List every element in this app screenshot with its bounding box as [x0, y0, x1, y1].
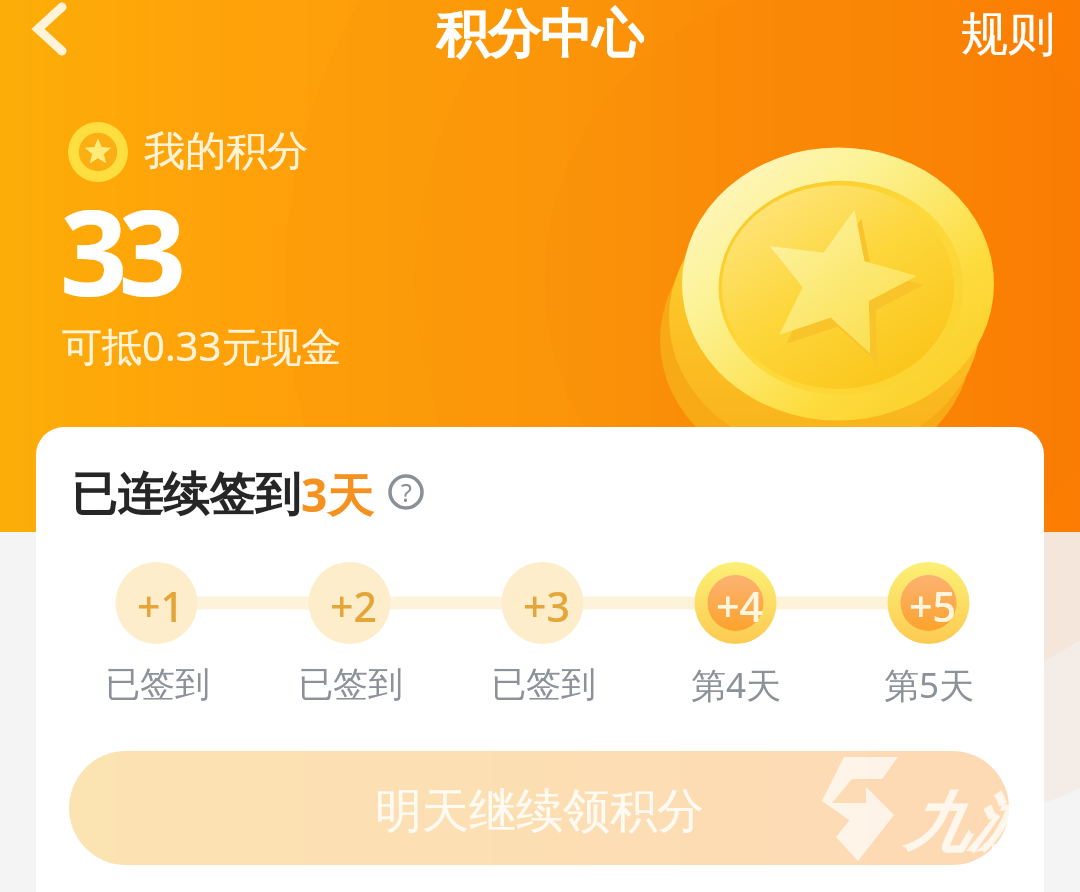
- staticText: 3天: [301, 463, 374, 526]
- staticText: 积分中心: [436, 2, 644, 60]
- button[interactable]: +5: [886, 560, 978, 652]
- button[interactable]: 规则: [936, 0, 1080, 58]
- staticText: 九游: [904, 783, 1032, 864]
- staticText: 第5天: [884, 661, 975, 707]
- staticText: 规则: [961, 5, 1055, 63]
- staticText: 我的积分: [144, 126, 308, 178]
- button[interactable]: Back: [0, 0, 100, 58]
- staticText: 第4天: [691, 661, 782, 707]
- button[interactable]: +1: [114, 560, 206, 652]
- staticText: ?: [401, 475, 412, 509]
- button[interactable]: Help: [388, 474, 424, 510]
- staticText: +3: [523, 578, 570, 634]
- staticText: +2: [330, 578, 377, 634]
- staticText: 33: [60, 170, 177, 331]
- staticText: 已签到: [298, 662, 403, 706]
- button[interactable]: 明天继续领积分: [69, 751, 1009, 865]
- staticText: 明天继续领积分: [375, 782, 704, 841]
- staticText: 可抵0.33元现金: [62, 318, 342, 373]
- button[interactable]: +3: [500, 560, 592, 652]
- staticText: +1: [137, 578, 184, 634]
- button[interactable]: +4: [693, 560, 785, 652]
- staticText: +5: [909, 578, 956, 634]
- staticText: 已签到: [491, 662, 596, 706]
- staticText: 已签到: [105, 662, 210, 706]
- staticText: +4: [716, 578, 763, 634]
- button[interactable]: +2: [307, 560, 399, 652]
- staticText: 已连续签到: [71, 466, 301, 524]
